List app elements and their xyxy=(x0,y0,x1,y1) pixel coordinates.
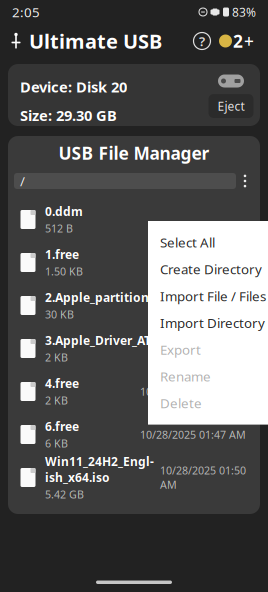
button[interactable]: Rename xyxy=(148,363,268,390)
staticText: Rename xyxy=(160,367,211,385)
staticText: Device: Disk 20 xyxy=(20,77,127,96)
button[interactable]: 2.Apple_partition_map xyxy=(8,284,260,327)
button[interactable]: 4.free xyxy=(8,370,260,413)
staticText: 2:05 xyxy=(12,3,40,21)
button[interactable]: 1.free xyxy=(8,241,260,284)
button[interactable]: Export xyxy=(148,336,268,363)
staticText: 3.Apple_Driver_ATAPI xyxy=(45,332,170,348)
button[interactable]: More options xyxy=(236,170,254,192)
staticText: 2 KB xyxy=(45,393,68,408)
button[interactable]: Win11_24H2_English_x64.iso xyxy=(8,456,260,499)
staticText: Export xyxy=(160,341,201,358)
button[interactable]: Create Directory xyxy=(148,256,268,283)
staticText: Import File / Files xyxy=(160,287,266,305)
staticText: 4.free xyxy=(45,375,79,391)
staticText: 6 KB xyxy=(45,436,68,451)
staticText: 0.ddm xyxy=(45,203,83,219)
button[interactable]: Coins, add more xyxy=(215,28,258,54)
staticText: Eject xyxy=(217,98,244,114)
staticText: Win11_24H2_English_x64.iso xyxy=(45,453,154,485)
staticText: USB File Manager xyxy=(58,141,209,164)
staticText: 5.42 GB xyxy=(45,487,84,502)
staticText: Size: 29.30 GB xyxy=(20,105,117,125)
staticText: + xyxy=(244,29,254,52)
button[interactable]: 0.ddm xyxy=(8,198,260,241)
button[interactable]: Eject xyxy=(208,94,253,118)
staticText: 1.free xyxy=(45,246,79,262)
staticText: 2 KB xyxy=(45,350,68,365)
staticText: / xyxy=(20,172,25,190)
button[interactable]: Select All xyxy=(148,229,268,256)
staticText: Delete xyxy=(160,394,202,412)
staticText: 2.Apple_partition_map xyxy=(45,289,181,305)
staticText: 10/28/2025 01:50 AM xyxy=(160,463,246,492)
staticText: ? xyxy=(199,32,205,50)
staticText: 512 B xyxy=(45,221,73,236)
button[interactable]: Import Directory xyxy=(148,309,268,336)
staticText: Ultimate USB xyxy=(29,28,162,54)
button[interactable]: Help xyxy=(189,28,215,54)
staticText: 83% xyxy=(232,4,256,20)
button[interactable]: 6.free xyxy=(8,413,260,456)
button[interactable]: 3.Apple_Driver_ATAPI xyxy=(8,327,260,370)
staticText: 10/28/2025 01:47 AM xyxy=(140,384,246,399)
staticText: 6.free xyxy=(45,418,79,434)
staticText: 2 xyxy=(233,29,243,52)
button[interactable]: Delete xyxy=(148,390,268,417)
staticText: Import Directory xyxy=(160,314,265,332)
button[interactable]: / xyxy=(14,173,236,189)
staticText: Select All xyxy=(160,233,215,251)
staticText: 30 KB xyxy=(45,307,74,322)
staticText: 1.50 KB xyxy=(45,264,83,279)
staticText: Create Directory xyxy=(160,260,262,278)
staticText: 10/28/2025 01:47 AM xyxy=(140,427,246,442)
button[interactable]: Import File / Files xyxy=(148,283,268,309)
